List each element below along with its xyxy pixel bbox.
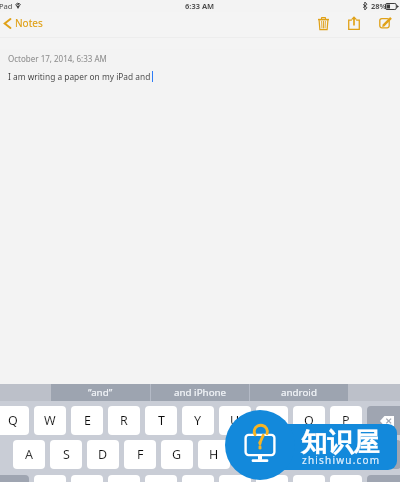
staticText: Y <box>194 412 202 429</box>
button[interactable]: G <box>161 440 193 469</box>
button[interactable]: V <box>145 475 177 482</box>
button[interactable]: Y <box>182 406 214 435</box>
button[interactable]: Share <box>342 11 366 35</box>
button[interactable]: S <box>50 440 82 469</box>
staticText: F <box>137 446 144 463</box>
button[interactable]: , <box>293 475 325 482</box>
staticText: Pad <box>0 1 13 11</box>
staticText: T <box>158 412 165 429</box>
staticText: Notes <box>15 16 43 30</box>
button[interactable]: R <box>108 406 140 435</box>
staticText: L <box>322 446 329 463</box>
staticText: I am writing a paper on my iPad and <box>8 71 151 82</box>
button[interactable]: “and” <box>51 384 150 401</box>
staticText: R <box>120 412 128 429</box>
button[interactable]: O <box>293 406 325 435</box>
button[interactable]: H <box>198 440 230 469</box>
button[interactable]: U <box>219 406 251 435</box>
staticText: and iPhone <box>174 386 227 399</box>
button[interactable]: T <box>145 406 177 435</box>
button[interactable]: B <box>182 475 214 482</box>
button[interactable]: New note <box>373 11 397 35</box>
staticText: P <box>342 412 350 429</box>
button[interactable]: Z <box>34 475 66 482</box>
button[interactable]: and iPhone <box>151 384 249 401</box>
button[interactable]: X <box>71 475 103 482</box>
button[interactable]: Notes <box>1 13 47 33</box>
staticText: E <box>84 412 91 429</box>
staticText: 6:33 AM <box>185 1 215 11</box>
staticText: A <box>25 446 33 463</box>
button[interactable]: J <box>235 440 267 469</box>
button[interactable]: Delete note <box>311 11 335 35</box>
staticText: W <box>44 412 56 429</box>
button[interactable]: Shift <box>0 475 29 482</box>
button[interactable]: C <box>108 475 140 482</box>
staticText: J <box>249 446 253 463</box>
button[interactable]: . <box>330 475 362 482</box>
button[interactable]: Shift <box>367 475 400 482</box>
button[interactable]: android <box>250 384 348 401</box>
staticText: Q <box>8 412 18 429</box>
staticText: H <box>209 446 219 463</box>
staticText: October 17, 2014, 6:33 AM <box>8 53 107 64</box>
staticText: zhishiwu.com <box>302 453 381 467</box>
staticText: 知识屋 <box>301 426 379 459</box>
button[interactable]: W <box>34 406 66 435</box>
button[interactable]: Return <box>346 440 400 469</box>
button[interactable]: M <box>256 475 288 482</box>
button[interactable]: F <box>124 440 156 469</box>
staticText: 28% <box>371 1 387 11</box>
button[interactable]: P <box>330 406 362 435</box>
staticText: “and” <box>88 386 113 399</box>
button[interactable]: L <box>309 440 341 469</box>
staticText: D <box>98 446 108 463</box>
button[interactable]: A <box>13 440 45 469</box>
button[interactable]: K <box>272 440 304 469</box>
staticText: android <box>281 386 317 399</box>
button[interactable]: N <box>219 475 251 482</box>
button[interactable]: D <box>87 440 119 469</box>
button[interactable]: Q <box>0 406 29 435</box>
staticText: I <box>270 412 275 429</box>
staticText: S <box>63 446 70 463</box>
button[interactable]: I <box>256 406 288 435</box>
staticText: O <box>304 412 314 429</box>
button[interactable]: E <box>71 406 103 435</box>
staticText: G <box>172 446 182 463</box>
button[interactable]: Backspace <box>367 406 400 435</box>
staticText: U <box>230 412 240 429</box>
